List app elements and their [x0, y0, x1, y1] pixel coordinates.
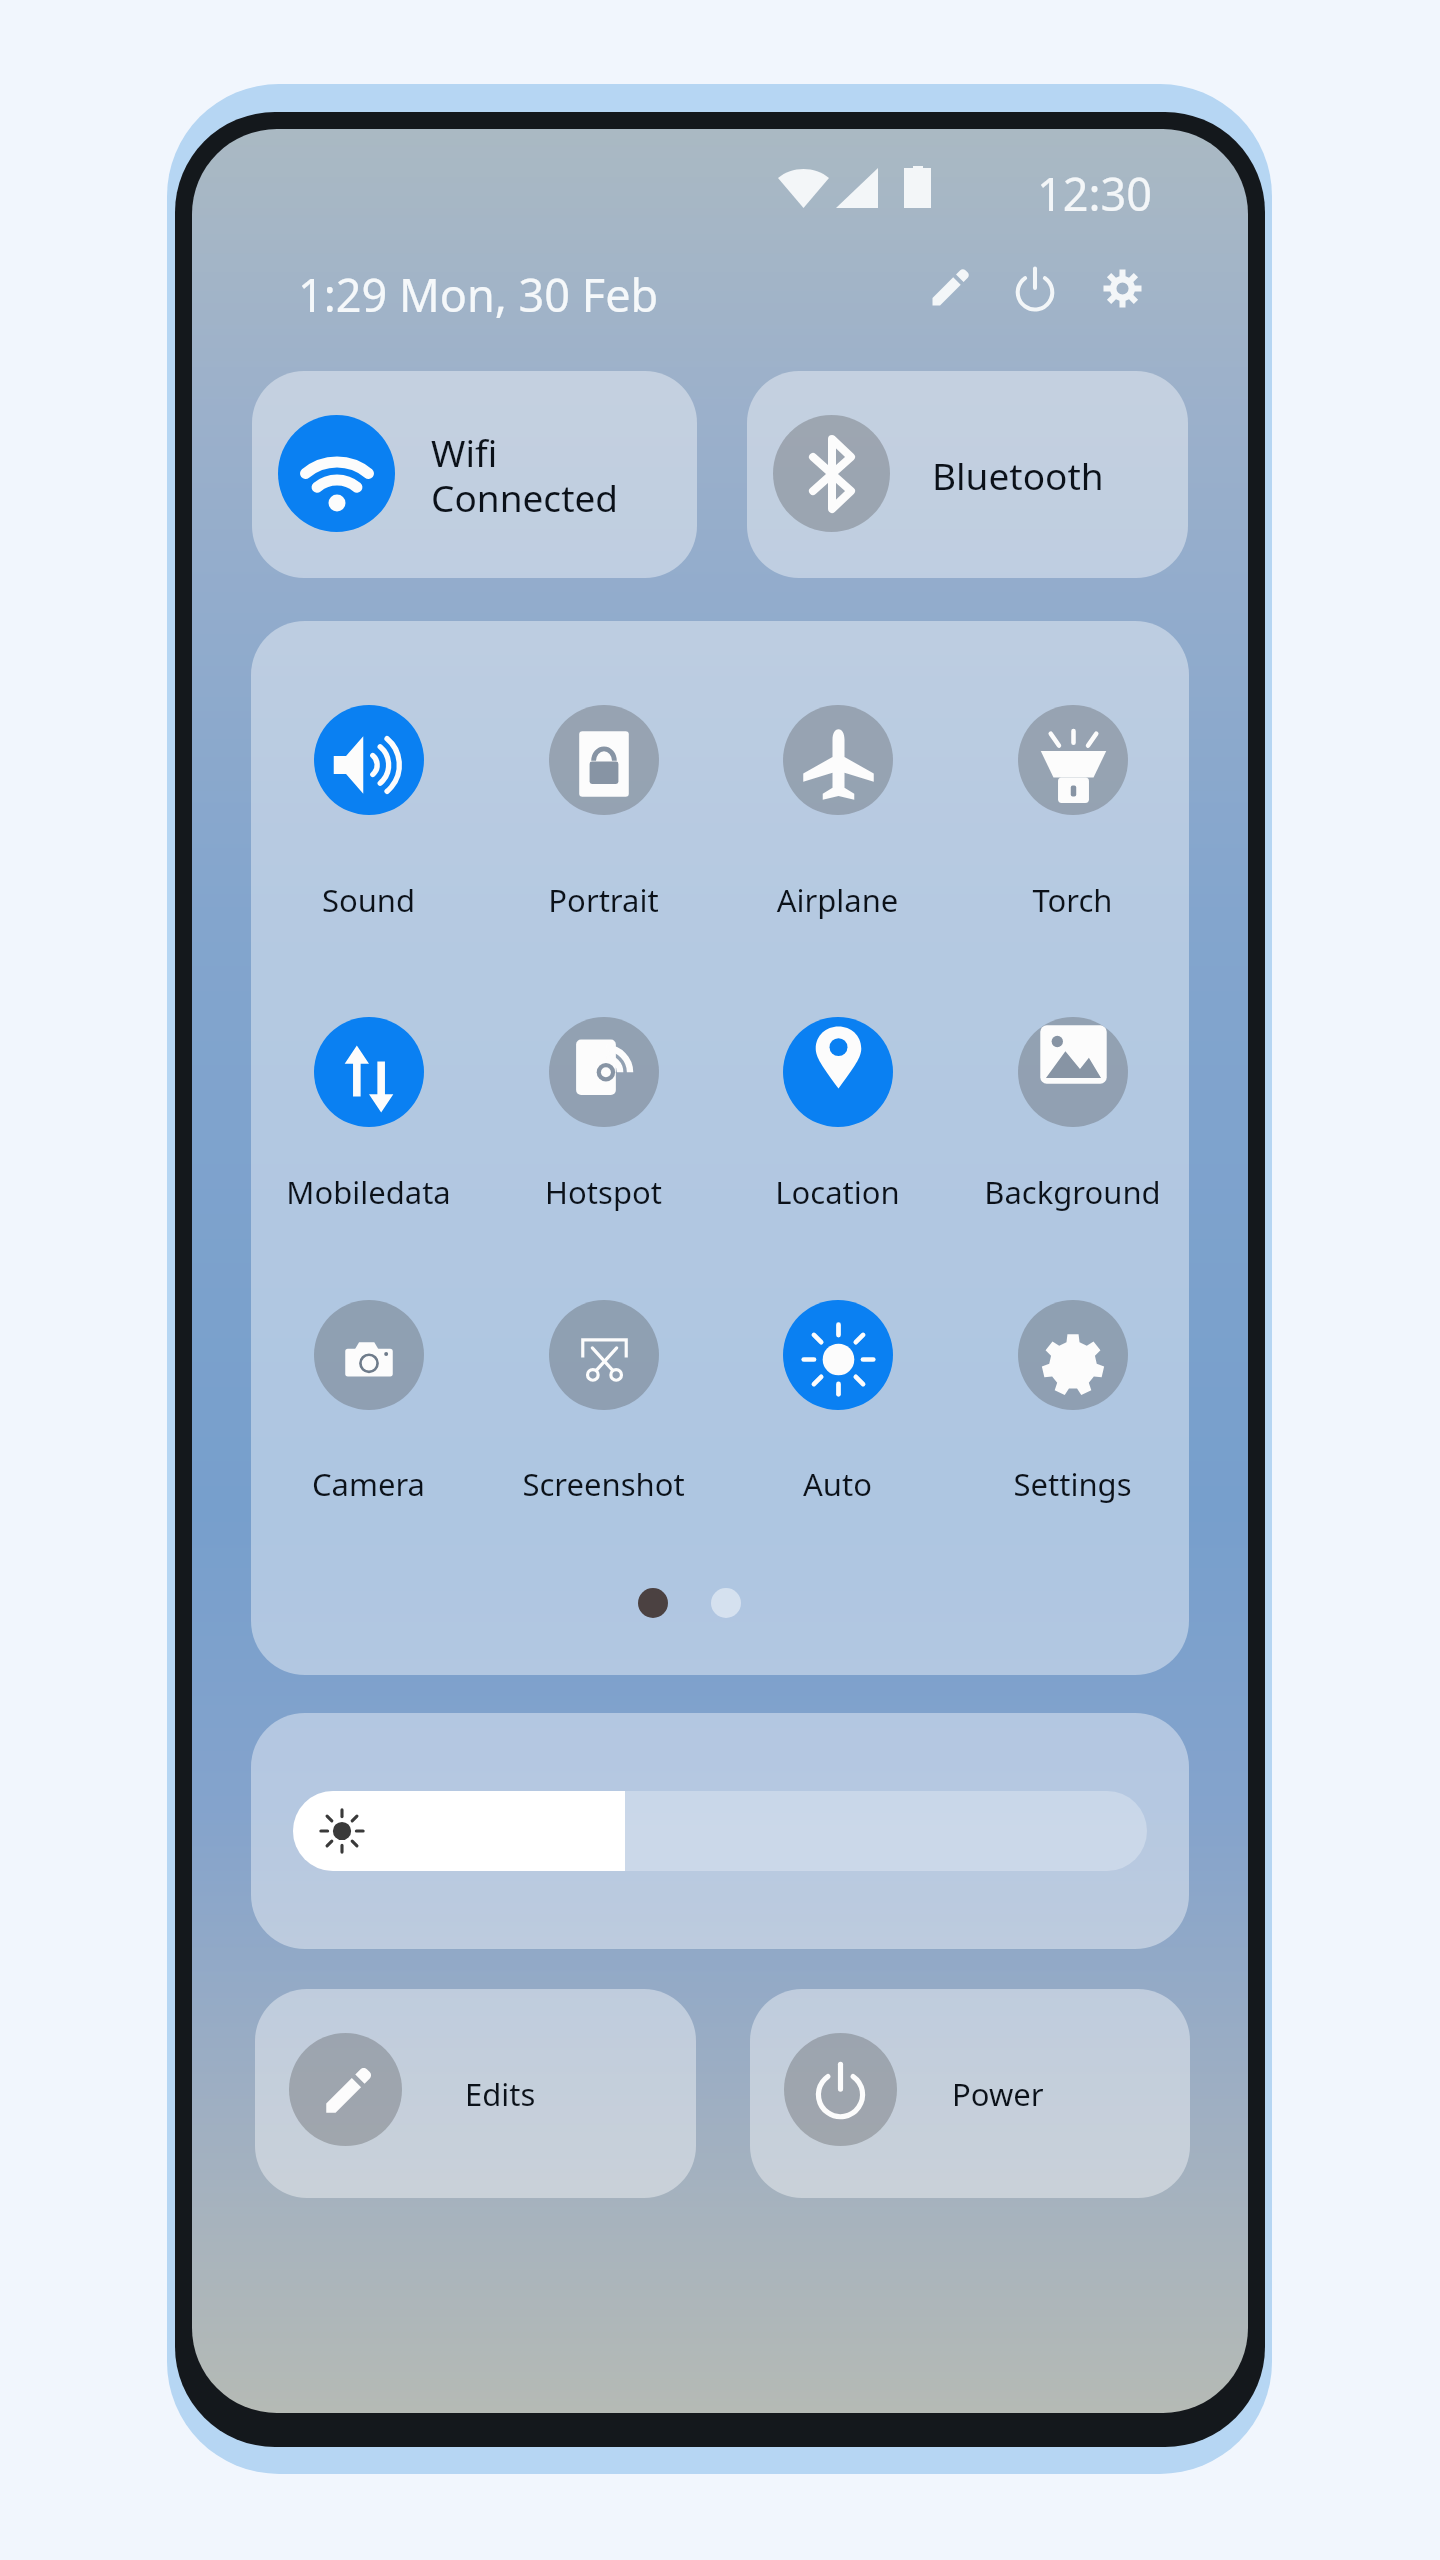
button[interactable]: Auto	[720, 1300, 955, 1507]
button[interactable]: Power	[750, 1989, 1190, 2198]
button[interactable]: Bluetooth	[747, 371, 1188, 578]
button[interactable]: Airplane	[720, 705, 955, 923]
staticText: Mobiledata	[251, 1171, 486, 1213]
button[interactable]: Brightness	[293, 1791, 1147, 1871]
button[interactable]: Mobiledata	[251, 1017, 486, 1215]
staticText: Sound	[251, 879, 486, 921]
button[interactable]: Wifi Connected	[252, 371, 697, 578]
button[interactable]: Portrait	[486, 705, 721, 923]
button[interactable]: Settings	[955, 1300, 1189, 1507]
button[interactable]: Edits	[255, 1989, 696, 2198]
staticText: Auto	[720, 1463, 955, 1505]
staticText: Bluetooth	[932, 450, 1104, 500]
button[interactable]: Camera	[251, 1300, 486, 1507]
staticText: Wifi Connected	[431, 427, 619, 523]
button[interactable]: Location	[720, 1017, 955, 1215]
button[interactable]: Background	[955, 1017, 1189, 1215]
button[interactable]: Hotspot	[486, 1017, 721, 1215]
staticText: Torch	[955, 879, 1189, 921]
button[interactable]: Torch	[955, 705, 1189, 923]
staticText: Background	[955, 1171, 1189, 1213]
staticText: 1:29 Mon, 30 Feb	[298, 264, 659, 325]
button[interactable]: Page 1	[638, 1588, 668, 1618]
button[interactable]: Settings	[1087, 253, 1158, 324]
button[interactable]: Sound	[251, 705, 486, 923]
staticText: Power	[952, 2073, 1044, 2115]
button[interactable]: Edit	[913, 253, 984, 324]
button[interactable]: Power	[999, 253, 1070, 324]
staticText: Location	[720, 1171, 955, 1213]
staticText: Hotspot	[486, 1171, 721, 1213]
staticText: Airplane	[720, 879, 955, 921]
button[interactable]: Screenshot	[486, 1300, 721, 1507]
staticText: Portrait	[486, 879, 721, 921]
button[interactable]: Page 2	[711, 1588, 741, 1618]
staticText: Camera	[251, 1463, 486, 1505]
staticText: Edits	[465, 2073, 536, 2115]
staticText: 12:30	[1037, 163, 1153, 224]
staticText: Screenshot	[486, 1463, 721, 1505]
staticText: Settings	[955, 1463, 1189, 1505]
